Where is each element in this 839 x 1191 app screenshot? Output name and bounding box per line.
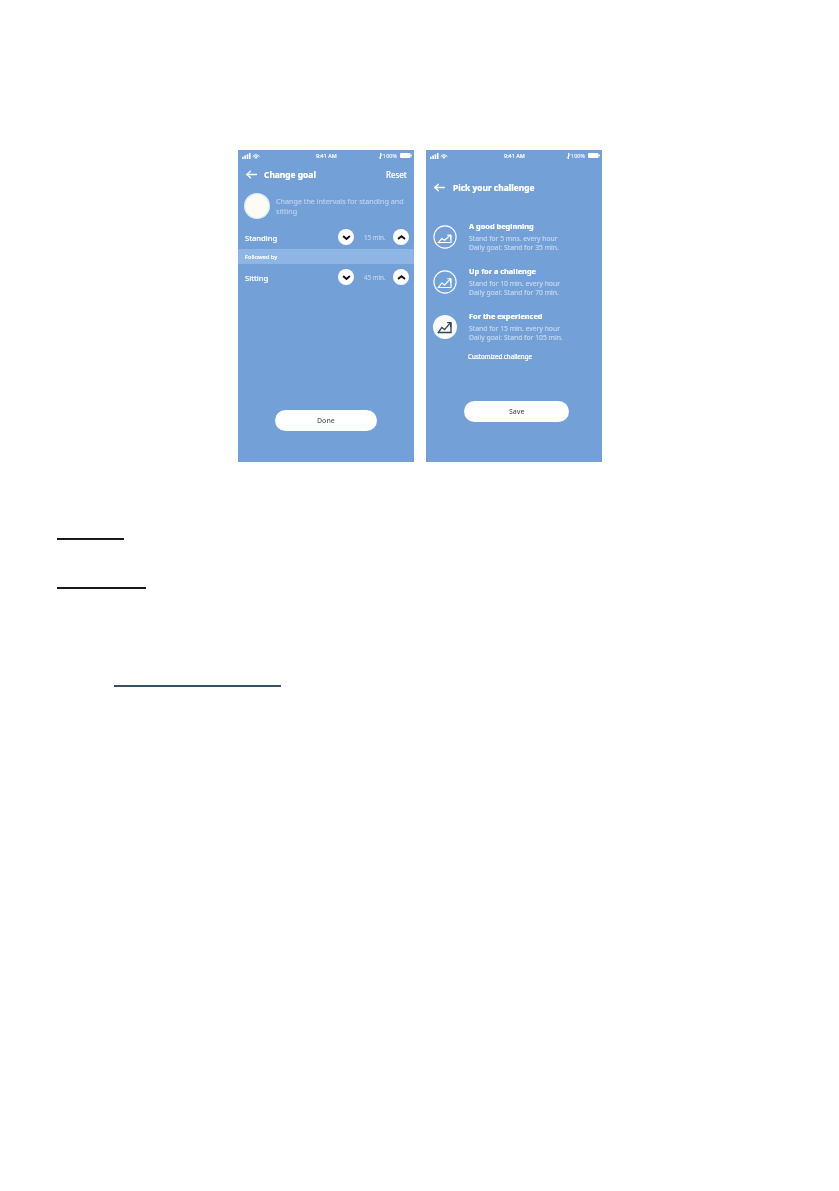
staticText: A good beginning bbox=[469, 221, 534, 231]
staticText: Daily goal: Stand for 70 min. bbox=[469, 288, 559, 297]
staticText: Pick your challenge bbox=[453, 182, 535, 193]
staticText: Stand for 10 min. every hour bbox=[469, 279, 560, 288]
staticText: Daily goal: Stand for 105 min. bbox=[469, 333, 563, 342]
staticText: Sitting bbox=[245, 273, 269, 283]
button[interactable]: Standing bbox=[238, 226, 414, 248]
staticText: Done bbox=[317, 416, 335, 426]
staticText: 45 min. bbox=[364, 273, 386, 281]
button[interactable]: Back bbox=[431, 179, 448, 196]
button[interactable]: Decrease Sitting bbox=[338, 269, 354, 285]
staticText: Stand for 15 min. every hour bbox=[469, 324, 560, 333]
staticText: Stand for 5 mns. every hour bbox=[469, 234, 558, 243]
staticText: Followed by bbox=[245, 253, 278, 261]
staticText: 100% bbox=[571, 152, 586, 159]
button[interactable]: Reset bbox=[386, 169, 407, 180]
button[interactable]: Decrease Standing bbox=[338, 229, 354, 245]
button[interactable]: Customized challenge bbox=[468, 352, 532, 360]
button[interactable]: Sitting bbox=[238, 266, 414, 288]
staticText: Change goal bbox=[264, 169, 316, 180]
staticText: Reset bbox=[386, 169, 407, 180]
button[interactable]: For the experienced bbox=[426, 311, 602, 349]
staticText: Daily goal: Stand for 35 min. bbox=[469, 243, 559, 252]
staticText: 9:41 AM bbox=[316, 152, 337, 159]
staticText: Standing bbox=[245, 233, 278, 243]
staticText: 15 min. bbox=[364, 233, 386, 241]
staticText: 100% bbox=[383, 152, 398, 159]
staticText: For the experienced bbox=[469, 311, 543, 321]
staticText: Save bbox=[509, 407, 525, 417]
button[interactable]: Increase Standing bbox=[393, 229, 409, 245]
staticText: Customized challenge bbox=[468, 352, 532, 360]
staticText: 9:41 AM bbox=[504, 152, 525, 159]
staticText: Up for a challenge bbox=[469, 266, 536, 276]
button[interactable]: Save bbox=[464, 401, 569, 422]
staticText: Change the intervals for standing and si… bbox=[276, 196, 404, 216]
button[interactable]: Done bbox=[275, 410, 377, 431]
button[interactable]: Increase Sitting bbox=[393, 269, 409, 285]
button[interactable]: A good beginning bbox=[426, 221, 602, 259]
button[interactable]: Up for a challenge bbox=[426, 266, 602, 304]
button[interactable]: Back bbox=[243, 166, 260, 183]
